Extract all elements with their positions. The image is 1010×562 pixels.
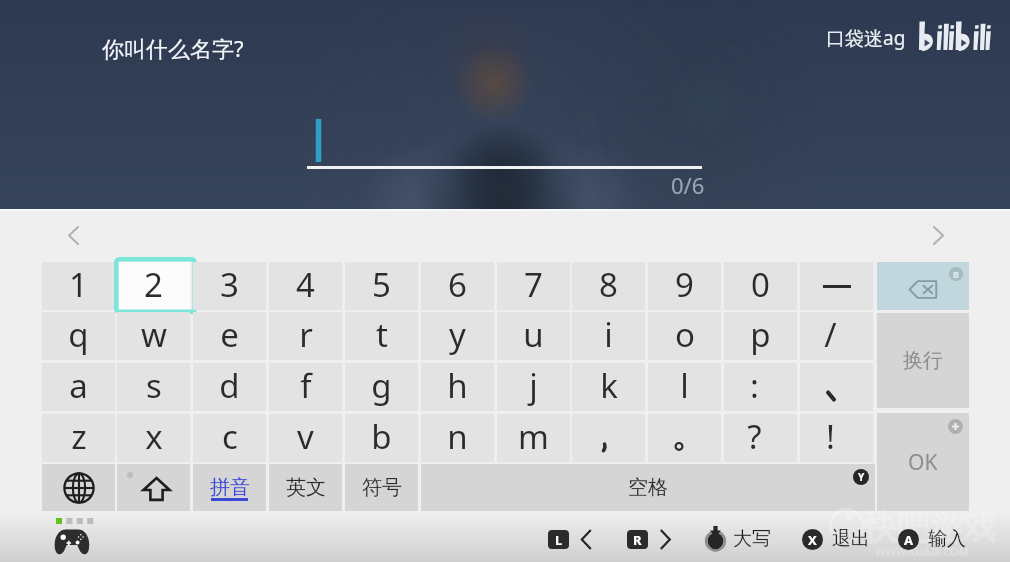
staticText: u	[523, 312, 544, 357]
staticText: 4	[296, 262, 315, 307]
staticText: j	[529, 363, 538, 408]
staticText: f	[300, 363, 312, 408]
button[interactable]: A	[898, 527, 966, 551]
staticText: 换行	[903, 348, 943, 373]
button[interactable]: 9	[648, 262, 721, 310]
staticText: 输入	[928, 527, 966, 551]
button[interactable]: w	[117, 312, 190, 360]
staticText: z	[71, 414, 87, 459]
staticText: l	[680, 363, 689, 408]
button[interactable]: Previous page	[63, 225, 83, 245]
button[interactable]: 2	[117, 262, 190, 310]
staticText: g	[371, 363, 392, 408]
staticText: c	[222, 414, 238, 459]
button[interactable]: k	[572, 363, 645, 411]
staticText: h	[447, 363, 468, 408]
button[interactable]: q	[42, 312, 115, 360]
staticText: Y	[858, 470, 865, 484]
button[interactable]: d	[193, 363, 266, 411]
button[interactable]: 英文	[269, 464, 342, 511]
button[interactable]: 8	[572, 262, 645, 310]
button[interactable]	[658, 528, 672, 550]
button[interactable]: y	[421, 312, 494, 360]
staticText: X	[808, 531, 817, 549]
staticText: 0/6	[671, 170, 705, 200]
button[interactable]: 拼音	[193, 464, 266, 511]
staticText: m	[518, 414, 549, 459]
button[interactable]: X	[802, 527, 870, 551]
staticText: 0	[751, 262, 770, 307]
button[interactable]: s	[117, 363, 190, 411]
staticText: /	[824, 312, 837, 357]
button[interactable]: /	[800, 312, 873, 360]
button[interactable]: f	[269, 363, 342, 411]
button[interactable]: 4	[269, 262, 342, 310]
staticText: 5	[372, 262, 391, 307]
button[interactable]: ?	[724, 414, 797, 462]
button[interactable]: x	[117, 414, 190, 462]
button[interactable]: b	[345, 414, 418, 462]
button[interactable]: h	[421, 363, 494, 411]
button[interactable]: 换行	[877, 313, 969, 408]
button[interactable]: L	[548, 530, 569, 549]
button[interactable]: v	[269, 414, 342, 462]
button[interactable]	[572, 414, 645, 462]
staticText: o	[675, 312, 695, 357]
staticText: 7	[524, 262, 543, 307]
button[interactable]	[800, 262, 873, 310]
staticText: ?	[747, 414, 762, 459]
button[interactable]: OK	[877, 413, 969, 511]
staticText: 空格	[628, 475, 668, 500]
button[interactable]: Next page	[928, 225, 948, 245]
staticText: a	[69, 363, 88, 408]
button[interactable]: m	[497, 414, 570, 462]
staticText: OK	[908, 448, 938, 477]
button[interactable]: 空格	[421, 464, 875, 511]
button[interactable]: 6	[421, 262, 494, 310]
button[interactable]: j	[497, 363, 570, 411]
staticText: y	[449, 312, 466, 357]
button[interactable]: n	[421, 414, 494, 462]
staticText: x	[145, 414, 163, 459]
button[interactable]	[579, 528, 593, 550]
button[interactable]: u	[497, 312, 570, 360]
staticText: p	[750, 312, 771, 357]
button[interactable]: Backspace	[877, 262, 969, 310]
staticText: 8	[599, 262, 618, 307]
button[interactable]	[648, 414, 721, 462]
button[interactable]: e	[193, 312, 266, 360]
button[interactable]: g	[345, 363, 418, 411]
button[interactable]: p	[724, 312, 797, 360]
button[interactable]: Change language	[42, 464, 115, 511]
button[interactable]: z	[42, 414, 115, 462]
button[interactable]: 5	[345, 262, 418, 310]
button[interactable]: !	[800, 414, 873, 462]
button[interactable]: Shift	[117, 464, 190, 511]
staticText: k	[600, 363, 618, 408]
button[interactable]: 1	[42, 262, 115, 310]
button[interactable]: 7	[497, 262, 570, 310]
staticText: B	[953, 268, 959, 280]
button[interactable]: 符号	[345, 464, 418, 511]
staticText: !	[826, 414, 835, 459]
button[interactable]: 0	[724, 262, 797, 310]
staticText: i	[604, 312, 613, 357]
staticText: 英文	[286, 475, 326, 500]
button[interactable]: r	[269, 312, 342, 360]
staticText: 拼音	[210, 475, 250, 500]
button[interactable]: c	[193, 414, 266, 462]
button[interactable]: t	[345, 312, 418, 360]
staticText: 快吧游戏	[864, 507, 996, 549]
button[interactable]: 大写	[705, 526, 771, 551]
button[interactable]: o	[648, 312, 721, 360]
staticText: t	[376, 312, 388, 357]
button[interactable]: R	[627, 530, 648, 549]
button[interactable]: a	[42, 363, 115, 411]
button[interactable]	[800, 363, 873, 411]
button[interactable]: i	[572, 312, 645, 360]
staticText: R	[633, 531, 642, 549]
staticText: e	[220, 312, 239, 357]
button[interactable]: :	[724, 363, 797, 411]
button[interactable]: l	[648, 363, 721, 411]
button[interactable]: 3	[193, 262, 266, 310]
